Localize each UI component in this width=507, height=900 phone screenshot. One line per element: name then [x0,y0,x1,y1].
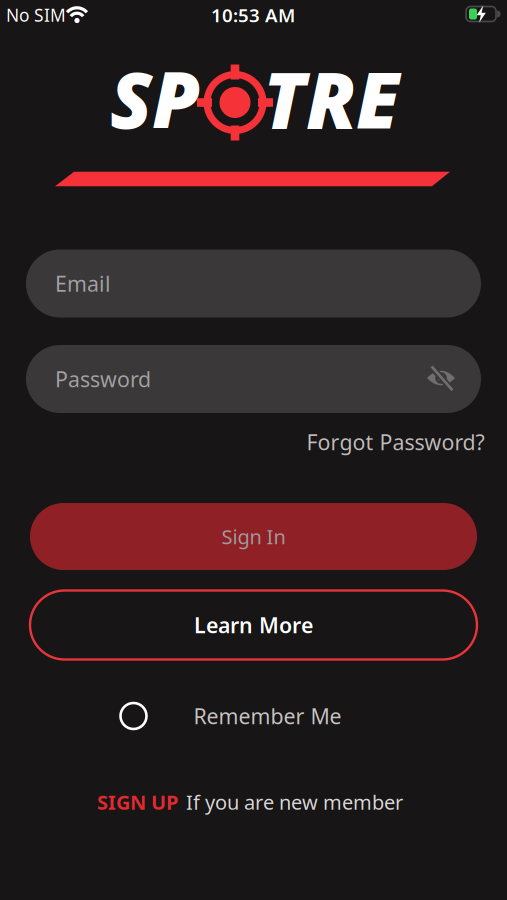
staticText: TRE [263,47,399,150]
button[interactable]: Remember Me [120,702,341,730]
button[interactable]: SIGN UP [97,789,403,815]
staticText: Forgot Password? [306,428,484,456]
staticText: Email [55,269,111,298]
staticText: SP [110,47,200,150]
staticText: Sign In [221,523,285,550]
staticText: If you are new member [186,789,403,815]
staticText: Remember Me [193,702,341,730]
staticText: Password [55,365,151,393]
staticText: No SIM [6,3,66,26]
staticText: 10:53 AM [211,3,295,27]
button[interactable]: Forgot Password? [306,428,484,456]
button[interactable]: Show password [427,367,455,391]
staticText: SIGN UP [97,789,178,815]
staticText: Learn More [194,611,313,639]
button[interactable]: Learn More [30,590,477,659]
button[interactable]: Sign In [30,503,477,570]
